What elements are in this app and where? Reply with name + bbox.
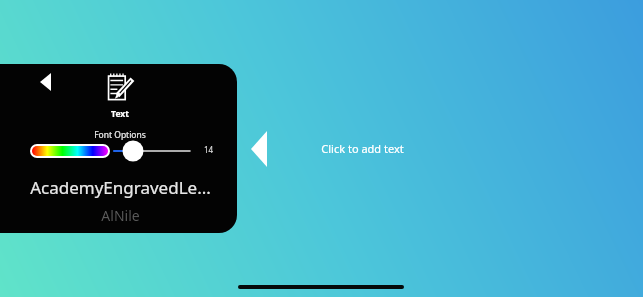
button[interactable]: Click to add text (312, 135, 412, 161)
button[interactable]: Previous (248, 128, 270, 170)
button[interactable]: Back (32, 68, 58, 96)
staticText: AcademyEngravedLe... (30, 176, 211, 199)
staticText: 14 (204, 144, 214, 155)
staticText: Text (111, 108, 129, 120)
button[interactable] (30, 144, 110, 158)
staticText: AlNile (101, 206, 140, 225)
button[interactable]: Text tool (104, 70, 136, 104)
button[interactable]: AcademyEngravedLe... (20, 172, 220, 202)
staticText: Click to add text (321, 141, 404, 156)
staticText: Font Options (94, 129, 146, 141)
button[interactable]: AlNile (48, 206, 192, 230)
button[interactable] (114, 138, 190, 164)
